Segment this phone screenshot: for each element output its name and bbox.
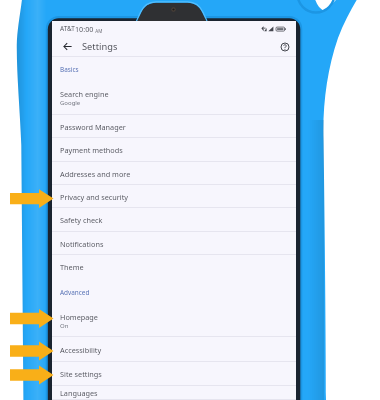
staticText: Settings [82,40,118,53]
staticText: Search engine [60,89,109,99]
button[interactable]: Accessibility [52,337,296,362]
button[interactable]: Addresses and more [52,162,296,185]
button[interactable]: Languages [52,386,296,400]
staticText: AT&T [60,24,75,33]
staticText: Site settings [60,369,102,379]
staticText: Theme [60,262,84,272]
staticText: Payment methods [60,145,123,155]
staticText: Privacy and security [60,192,129,202]
staticText: Languages [60,388,98,398]
staticText: Addresses and more [60,169,131,179]
button[interactable]: Help [277,39,293,55]
staticText: Advanced [60,288,90,297]
staticText: 10:00 [75,24,94,34]
button[interactable]: Payment methods [52,138,296,162]
staticText: On [60,322,69,330]
staticText: AM [94,28,103,34]
staticText: Notifications [60,239,104,249]
button[interactable]: Site settings [52,362,296,386]
button[interactable]: Search engine [52,81,296,115]
button[interactable]: Password Manager [52,115,296,138]
staticText: Google [60,99,81,107]
button[interactable]: Privacy and security [52,185,296,208]
staticText: Homepage [60,312,98,322]
staticText: Safety check [60,215,103,225]
staticText: Accessibility [60,345,102,355]
button[interactable]: Theme [52,255,296,279]
button[interactable]: Safety check [52,208,296,232]
button[interactable]: Notifications [52,232,296,255]
button[interactable]: Homepage [52,305,296,337]
staticText: Basics [60,65,79,74]
staticText: Password Manager [60,122,126,132]
button[interactable]: Back [56,36,78,57]
